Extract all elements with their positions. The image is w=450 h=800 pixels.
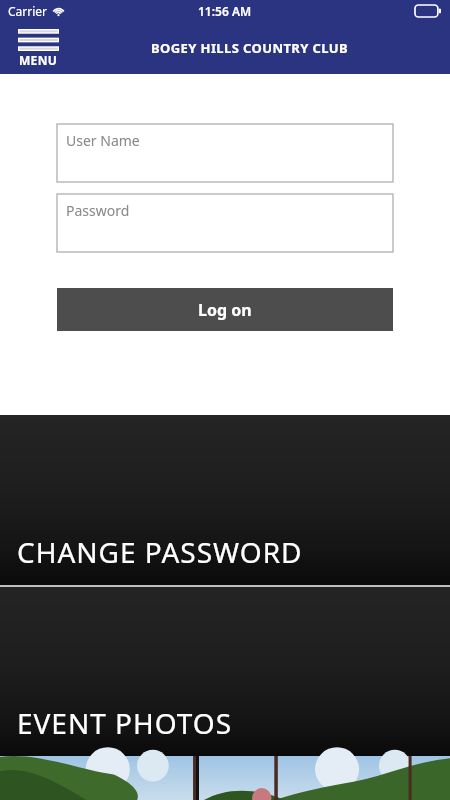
staticText: Log on [198,299,252,321]
button[interactable] [0,756,196,800]
button[interactable]: Menu [18,29,59,68]
staticText: BOGEY HILLS COUNTRY CLUB [151,39,349,57]
button[interactable]: Log on [57,288,393,331]
button[interactable]: EVENT PHOTOS [0,587,450,756]
staticText: Carrier [8,3,48,19]
button[interactable] [199,756,450,800]
staticText: Password [66,201,130,220]
staticText: User Name [66,131,140,150]
staticText: EVENT PHOTOS [17,704,233,742]
staticText: 11:56 AM [198,3,252,19]
button[interactable]: Password [57,194,393,252]
button[interactable]: CHANGE PASSWORD [0,415,450,585]
staticText: MENU [19,52,58,68]
staticText: CHANGE PASSWORD [17,533,303,571]
button[interactable]: User Name [57,124,393,182]
